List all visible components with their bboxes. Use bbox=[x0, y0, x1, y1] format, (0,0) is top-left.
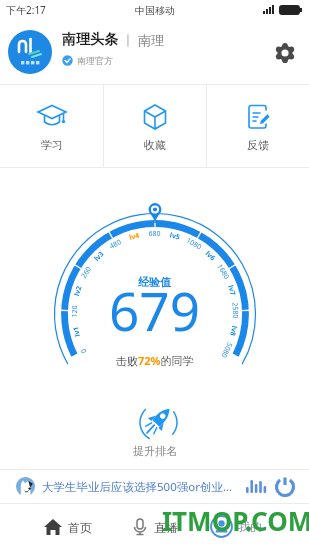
button[interactable] bbox=[8, 30, 52, 74]
staticText: 大学生毕业后应该选择500强or创业... bbox=[42, 479, 242, 495]
staticText: 我的 bbox=[238, 519, 262, 534]
staticText: 丨 bbox=[118, 31, 138, 49]
staticText: 击败72%的同学 bbox=[116, 353, 194, 368]
button[interactable] bbox=[135, 400, 181, 446]
staticText: 南理头条 bbox=[62, 31, 118, 49]
button[interactable]: 大学生毕业后应该选择500强or创业... bbox=[0, 470, 309, 503]
button[interactable]: 收藏 bbox=[104, 85, 206, 167]
staticText: 南理 bbox=[138, 32, 164, 48]
staticText: 反馈 bbox=[247, 138, 269, 152]
staticText: ITMOP.COM bbox=[162, 503, 309, 538]
staticText: 提升排名 bbox=[133, 444, 177, 458]
button[interactable]: 反馈 bbox=[207, 85, 309, 167]
staticText: 首页 bbox=[68, 520, 92, 535]
button[interactable]: 首页 bbox=[41, 515, 94, 539]
button[interactable]: 直播 bbox=[129, 516, 180, 538]
button[interactable] bbox=[274, 42, 296, 64]
staticText: 679 bbox=[109, 274, 200, 346]
staticText: 中国移动 bbox=[135, 4, 175, 17]
button[interactable] bbox=[274, 476, 296, 498]
staticText: 南理官方 bbox=[77, 55, 113, 66]
staticText: 下午2:17 bbox=[6, 3, 46, 17]
staticText: 学习 bbox=[41, 138, 63, 152]
staticText: 直播 bbox=[154, 520, 178, 535]
button[interactable]: 我的 bbox=[208, 513, 264, 540]
button[interactable]: 学习 bbox=[0, 85, 103, 167]
staticText: 收藏 bbox=[144, 138, 166, 152]
staticText: 经验值 bbox=[138, 275, 171, 289]
